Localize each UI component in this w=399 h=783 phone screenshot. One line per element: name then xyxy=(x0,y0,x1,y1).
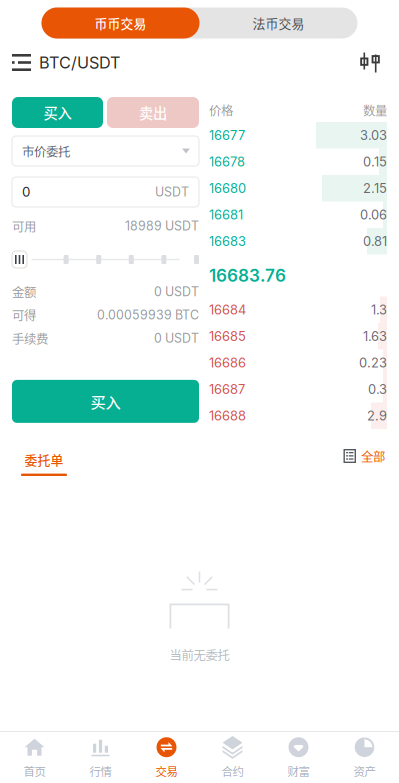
staticText: 0 USDT xyxy=(154,331,199,346)
staticText: 3.03 xyxy=(360,127,387,143)
staticText: 16684 xyxy=(209,302,246,318)
staticText: 2.9 xyxy=(367,408,387,424)
button[interactable]: 资产 xyxy=(331,732,397,783)
staticText: 16680 xyxy=(209,180,246,196)
staticText: 数量 xyxy=(363,101,387,119)
staticText: 金额 xyxy=(12,283,36,301)
staticText: 可用 xyxy=(12,217,36,235)
staticText: 行情 xyxy=(89,763,111,779)
staticText: 价格 xyxy=(209,101,233,119)
button[interactable]: 行情 xyxy=(67,732,133,783)
staticText: 16686 xyxy=(209,355,246,371)
button[interactable]: 财富 xyxy=(265,732,331,783)
button[interactable]: 合约 xyxy=(199,732,265,783)
staticText: 市价委托 xyxy=(22,142,70,160)
staticText: 全部 xyxy=(361,447,385,465)
staticText: 0.23 xyxy=(359,355,387,371)
staticText: 16683 xyxy=(209,233,246,249)
staticText: 资产 xyxy=(353,763,375,779)
button[interactable]: BTC/USDT xyxy=(12,46,120,79)
button[interactable]: 买入 xyxy=(12,380,199,423)
staticText: 买入 xyxy=(43,102,71,123)
staticText: 0.3 xyxy=(368,381,387,397)
staticText: BTC/USDT xyxy=(39,53,120,72)
button[interactable]: 市价委托 xyxy=(12,136,199,166)
staticText: 合约 xyxy=(221,763,243,779)
button[interactable]: 交易 xyxy=(133,732,199,783)
staticText: 18989 USDT xyxy=(125,218,199,233)
staticText: 可得 xyxy=(12,306,36,324)
staticText: 0.06 xyxy=(360,207,387,223)
button[interactable]: 买入 xyxy=(12,97,103,128)
staticText: 卖出 xyxy=(139,102,167,123)
button[interactable]: 全部 xyxy=(343,436,385,476)
staticText: 0.15 xyxy=(363,154,387,170)
staticText: 0.00059939 BTC xyxy=(97,307,199,322)
staticText: 16685 xyxy=(209,328,246,344)
staticText: 手续费 xyxy=(12,329,48,347)
staticText: 0 xyxy=(22,184,30,200)
staticText: 16687 xyxy=(209,381,245,397)
staticText: 16678 xyxy=(209,154,245,170)
button[interactable]: 首页 xyxy=(1,732,67,783)
staticText: 0 USDT xyxy=(154,284,199,299)
button[interactable]: K-line chart xyxy=(353,46,387,79)
staticText: 委托单 xyxy=(24,450,63,469)
staticText: 币币交易 xyxy=(94,14,146,32)
staticText: 0.81 xyxy=(363,233,387,249)
button[interactable]: 委托单 xyxy=(21,436,67,476)
button[interactable]: 币币交易 xyxy=(41,7,199,38)
staticText: 16688 xyxy=(209,408,246,424)
staticText: USDT xyxy=(155,184,189,199)
staticText: 16681 xyxy=(209,207,243,223)
staticText: 2.15 xyxy=(363,180,387,196)
staticText: 交易 xyxy=(155,763,177,779)
staticText: 1.3 xyxy=(371,302,387,318)
staticText: 16683.76 xyxy=(209,265,286,286)
staticText: 1.63 xyxy=(363,328,387,344)
button[interactable]: 卖出 xyxy=(107,97,199,128)
staticText: 16677 xyxy=(209,127,245,143)
staticText: 财富 xyxy=(287,763,309,779)
staticText: 法币交易 xyxy=(252,14,304,32)
staticText: 买入 xyxy=(90,390,120,412)
button[interactable]: 法币交易 xyxy=(199,7,357,38)
staticText: 首页 xyxy=(23,763,45,779)
staticText: 当前无委托 xyxy=(169,645,229,663)
